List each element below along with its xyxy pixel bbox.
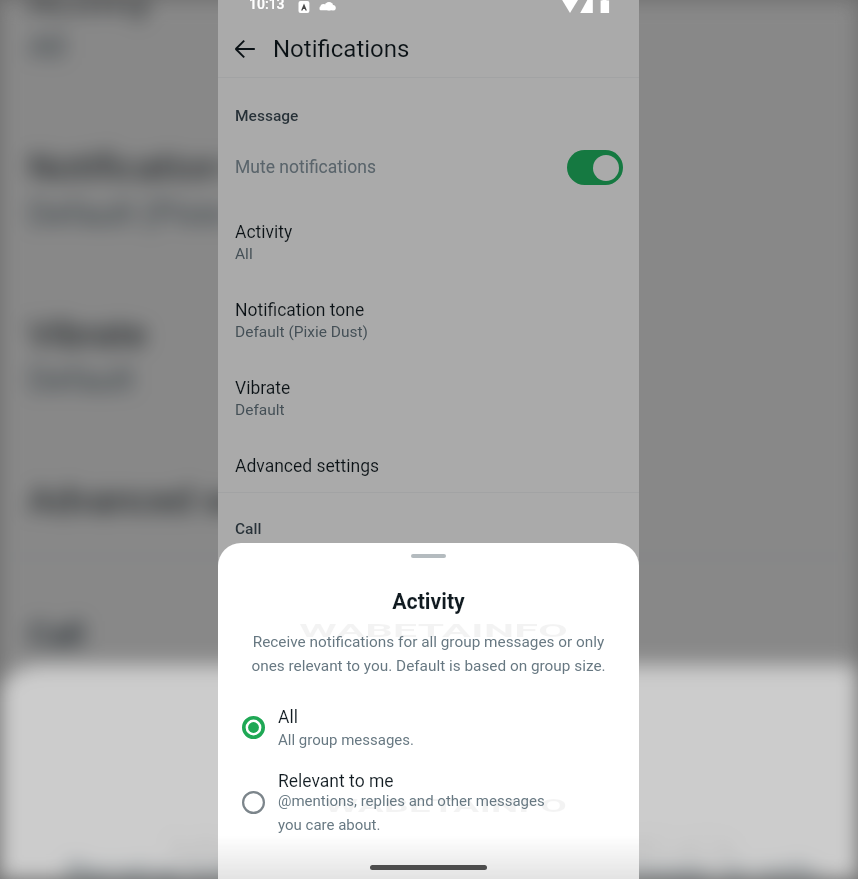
staticText: Vibrate (28, 312, 148, 357)
staticText: All (278, 707, 298, 728)
button[interactable]: Notification tone (218, 289, 639, 347)
staticText: All (28, 28, 67, 67)
staticText: Default (Pixie Dust) (235, 323, 368, 341)
button[interactable]: Advanced settings (0, 451, 858, 547)
staticText: Activity (235, 222, 293, 243)
staticText: Advanced settings (235, 456, 380, 477)
button[interactable]: Activity (0, 0, 858, 80)
staticText: Mute notifications (235, 157, 567, 178)
staticText: Default (235, 401, 285, 419)
staticText: @mentions, replies and other messages yo… (278, 792, 545, 834)
staticText: All group messages. (278, 731, 414, 749)
button[interactable]: Notification tone (0, 122, 858, 246)
button[interactable]: Mute notifications (218, 147, 639, 188)
staticText: Notification tone (235, 300, 365, 321)
staticText: Receive notifications for all group mess… (0, 857, 858, 879)
button[interactable]: Advanced settings (218, 443, 639, 488)
staticText: Receive notifications for all group mess… (218, 633, 639, 675)
staticText: WABETAINFO (299, 619, 568, 641)
staticText: Relevant to me (278, 771, 394, 792)
staticText: Call (28, 616, 86, 654)
staticText: Activity (218, 589, 639, 614)
staticText: Vibrate (235, 378, 291, 399)
staticText: Activity (0, 763, 858, 816)
staticText: Default (28, 361, 135, 400)
staticText: Notification tone (28, 146, 306, 191)
button[interactable]: Vibrate (0, 289, 858, 413)
button[interactable]: All (218, 698, 639, 750)
staticText: Call (235, 520, 262, 538)
staticText: 10:13 (249, 0, 285, 10)
button[interactable]: Back (222, 26, 267, 71)
button[interactable]: Relevant to me (218, 762, 639, 834)
staticText: Activity (28, 0, 152, 24)
button[interactable]: Vibrate (218, 367, 639, 425)
staticText: WABETAINFO (165, 827, 740, 874)
staticText: All (235, 245, 253, 263)
staticText: Default (Pixie Dust) (28, 195, 312, 233)
staticText: Notifications (273, 35, 410, 63)
staticText: WABETAINFO (324, 794, 567, 816)
staticText: Advanced settings (28, 479, 338, 524)
button[interactable]: Activity (218, 211, 639, 269)
staticText: Message (235, 107, 299, 125)
